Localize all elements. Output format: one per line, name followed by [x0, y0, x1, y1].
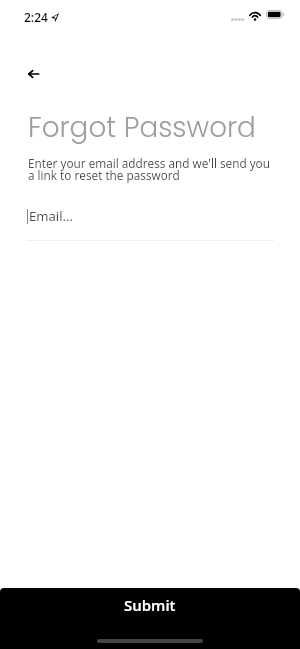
staticText: Forgot Password [28, 108, 256, 147]
button[interactable]: Back [19, 59, 48, 88]
button[interactable]: Email... [27, 207, 274, 225]
staticText: Submit [124, 595, 176, 615]
staticText: Email... [29, 207, 73, 225]
button[interactable]: Submit [0, 588, 300, 649]
staticText: Enter your email address and we'll send … [28, 155, 272, 183]
staticText: 2:24 [24, 9, 48, 25]
